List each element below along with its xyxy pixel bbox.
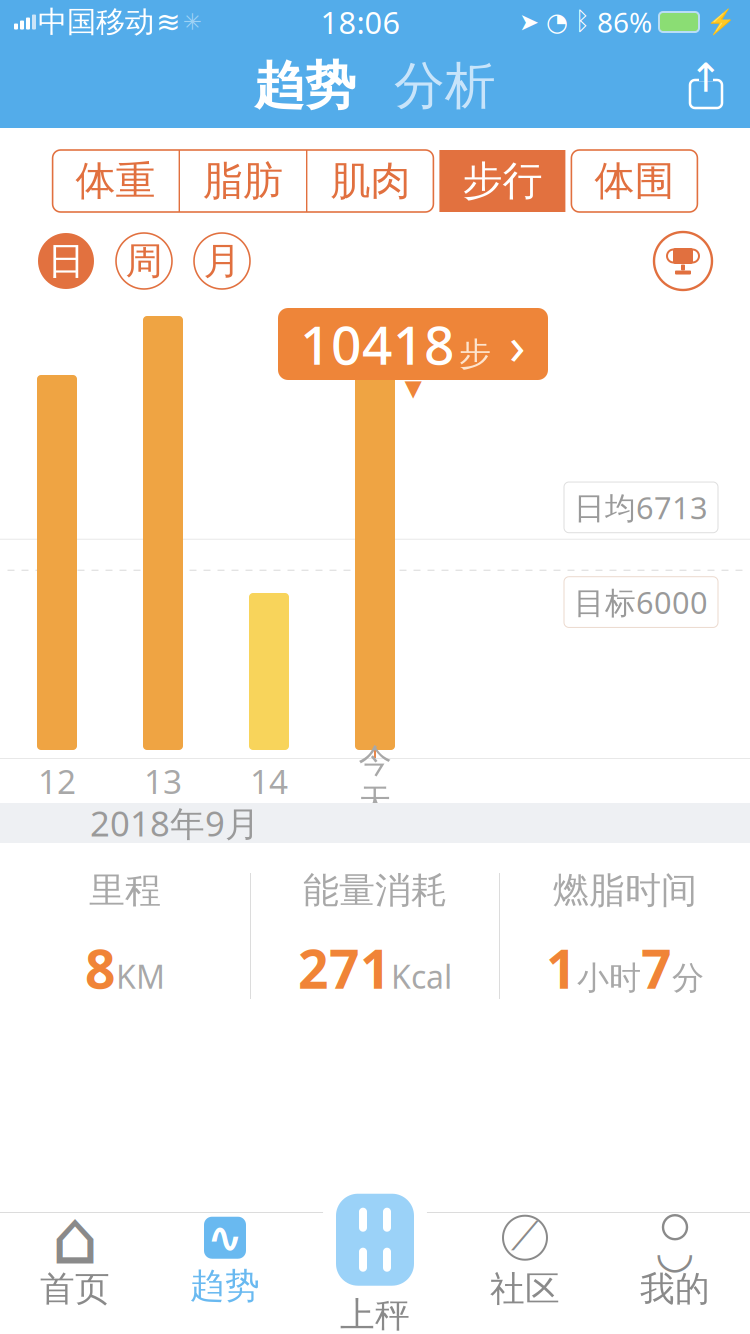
staticText: ◔ — [546, 8, 568, 36]
staticText: 体围 — [594, 156, 674, 205]
button[interactable]: 成就 — [654, 232, 712, 290]
button[interactable]: 体重 — [53, 150, 179, 212]
staticText: 肌肉 — [330, 156, 410, 205]
staticText: 目标6000 — [574, 582, 708, 622]
button[interactable]: 周 — [116, 233, 172, 289]
button[interactable]: 分析 — [394, 55, 496, 117]
staticText: 2018年9月 — [90, 800, 260, 846]
button[interactable]: ⌂ — [0, 1214, 150, 1310]
staticText: ⚡ — [706, 8, 736, 36]
staticText: 我的 — [640, 1268, 710, 1310]
staticText: 中国移动 — [38, 4, 154, 40]
staticText: 步行 — [462, 156, 542, 205]
staticText: 体重 — [76, 156, 156, 205]
staticText: 周 — [125, 238, 162, 284]
staticText: 社区 — [490, 1268, 560, 1310]
staticText: ◡ — [655, 1225, 695, 1277]
button[interactable]: ∿ — [150, 1214, 300, 1310]
staticText: 86% — [597, 3, 652, 41]
staticText: 小时 — [577, 958, 641, 998]
staticText: › — [509, 309, 526, 379]
button[interactable]: 月 — [194, 233, 250, 289]
button[interactable]: 步行 — [439, 150, 565, 212]
button[interactable]: 脂肪 — [180, 150, 306, 212]
button[interactable]: 日 — [38, 233, 94, 289]
staticText: ≋ — [156, 5, 181, 39]
staticText: 上秤 — [340, 1294, 410, 1334]
staticText: 趋势 — [190, 1265, 260, 1307]
staticText: 里程 — [89, 868, 161, 913]
staticText: ✳ — [183, 9, 202, 35]
staticText: 燃脂时间 — [553, 868, 697, 913]
staticText: Kcal — [391, 955, 452, 998]
staticText: ↑ — [689, 55, 723, 101]
staticText: 日 — [47, 238, 84, 284]
staticText: 今天 — [358, 740, 391, 822]
button[interactable]: 分享 — [680, 60, 732, 112]
staticText: 8 — [85, 933, 116, 1003]
staticText: 14 — [250, 759, 288, 803]
staticText: 分析 — [394, 55, 496, 117]
button[interactable]: 肌肉 — [307, 150, 433, 212]
staticText: 步 — [459, 334, 491, 374]
staticText: 能量消耗 — [303, 868, 447, 913]
button[interactable]: 趋势 — [254, 55, 356, 117]
staticText: 首页 — [40, 1268, 110, 1310]
staticText: KM — [116, 955, 165, 998]
staticText: ⟋ — [511, 1218, 539, 1257]
staticText: 脂肪 — [203, 156, 283, 205]
staticText: 日均6713 — [574, 487, 708, 528]
staticText: 趋势 — [254, 55, 356, 117]
staticText: 18:06 — [320, 2, 400, 42]
staticText: 10418 — [300, 309, 455, 379]
staticText: 7 — [641, 933, 672, 1003]
staticText: 月 — [203, 238, 240, 284]
button[interactable]: ⟋ — [450, 1214, 600, 1310]
staticText: 13 — [144, 759, 182, 803]
staticText: ⌂ — [51, 1195, 98, 1280]
staticText: 271 — [298, 933, 391, 1003]
button[interactable]: 上秤 — [300, 1188, 450, 1334]
staticText: 1 — [546, 933, 577, 1003]
staticText: 分 — [672, 958, 704, 998]
staticText: ▾ — [404, 367, 421, 407]
staticText: 12 — [38, 759, 76, 803]
staticText: ∿ — [207, 1213, 243, 1262]
button[interactable]: 体围 — [571, 150, 697, 212]
staticText: ᛒ — [575, 10, 590, 34]
staticText: ➤ — [519, 8, 539, 36]
button[interactable]: ◡ — [600, 1214, 750, 1310]
